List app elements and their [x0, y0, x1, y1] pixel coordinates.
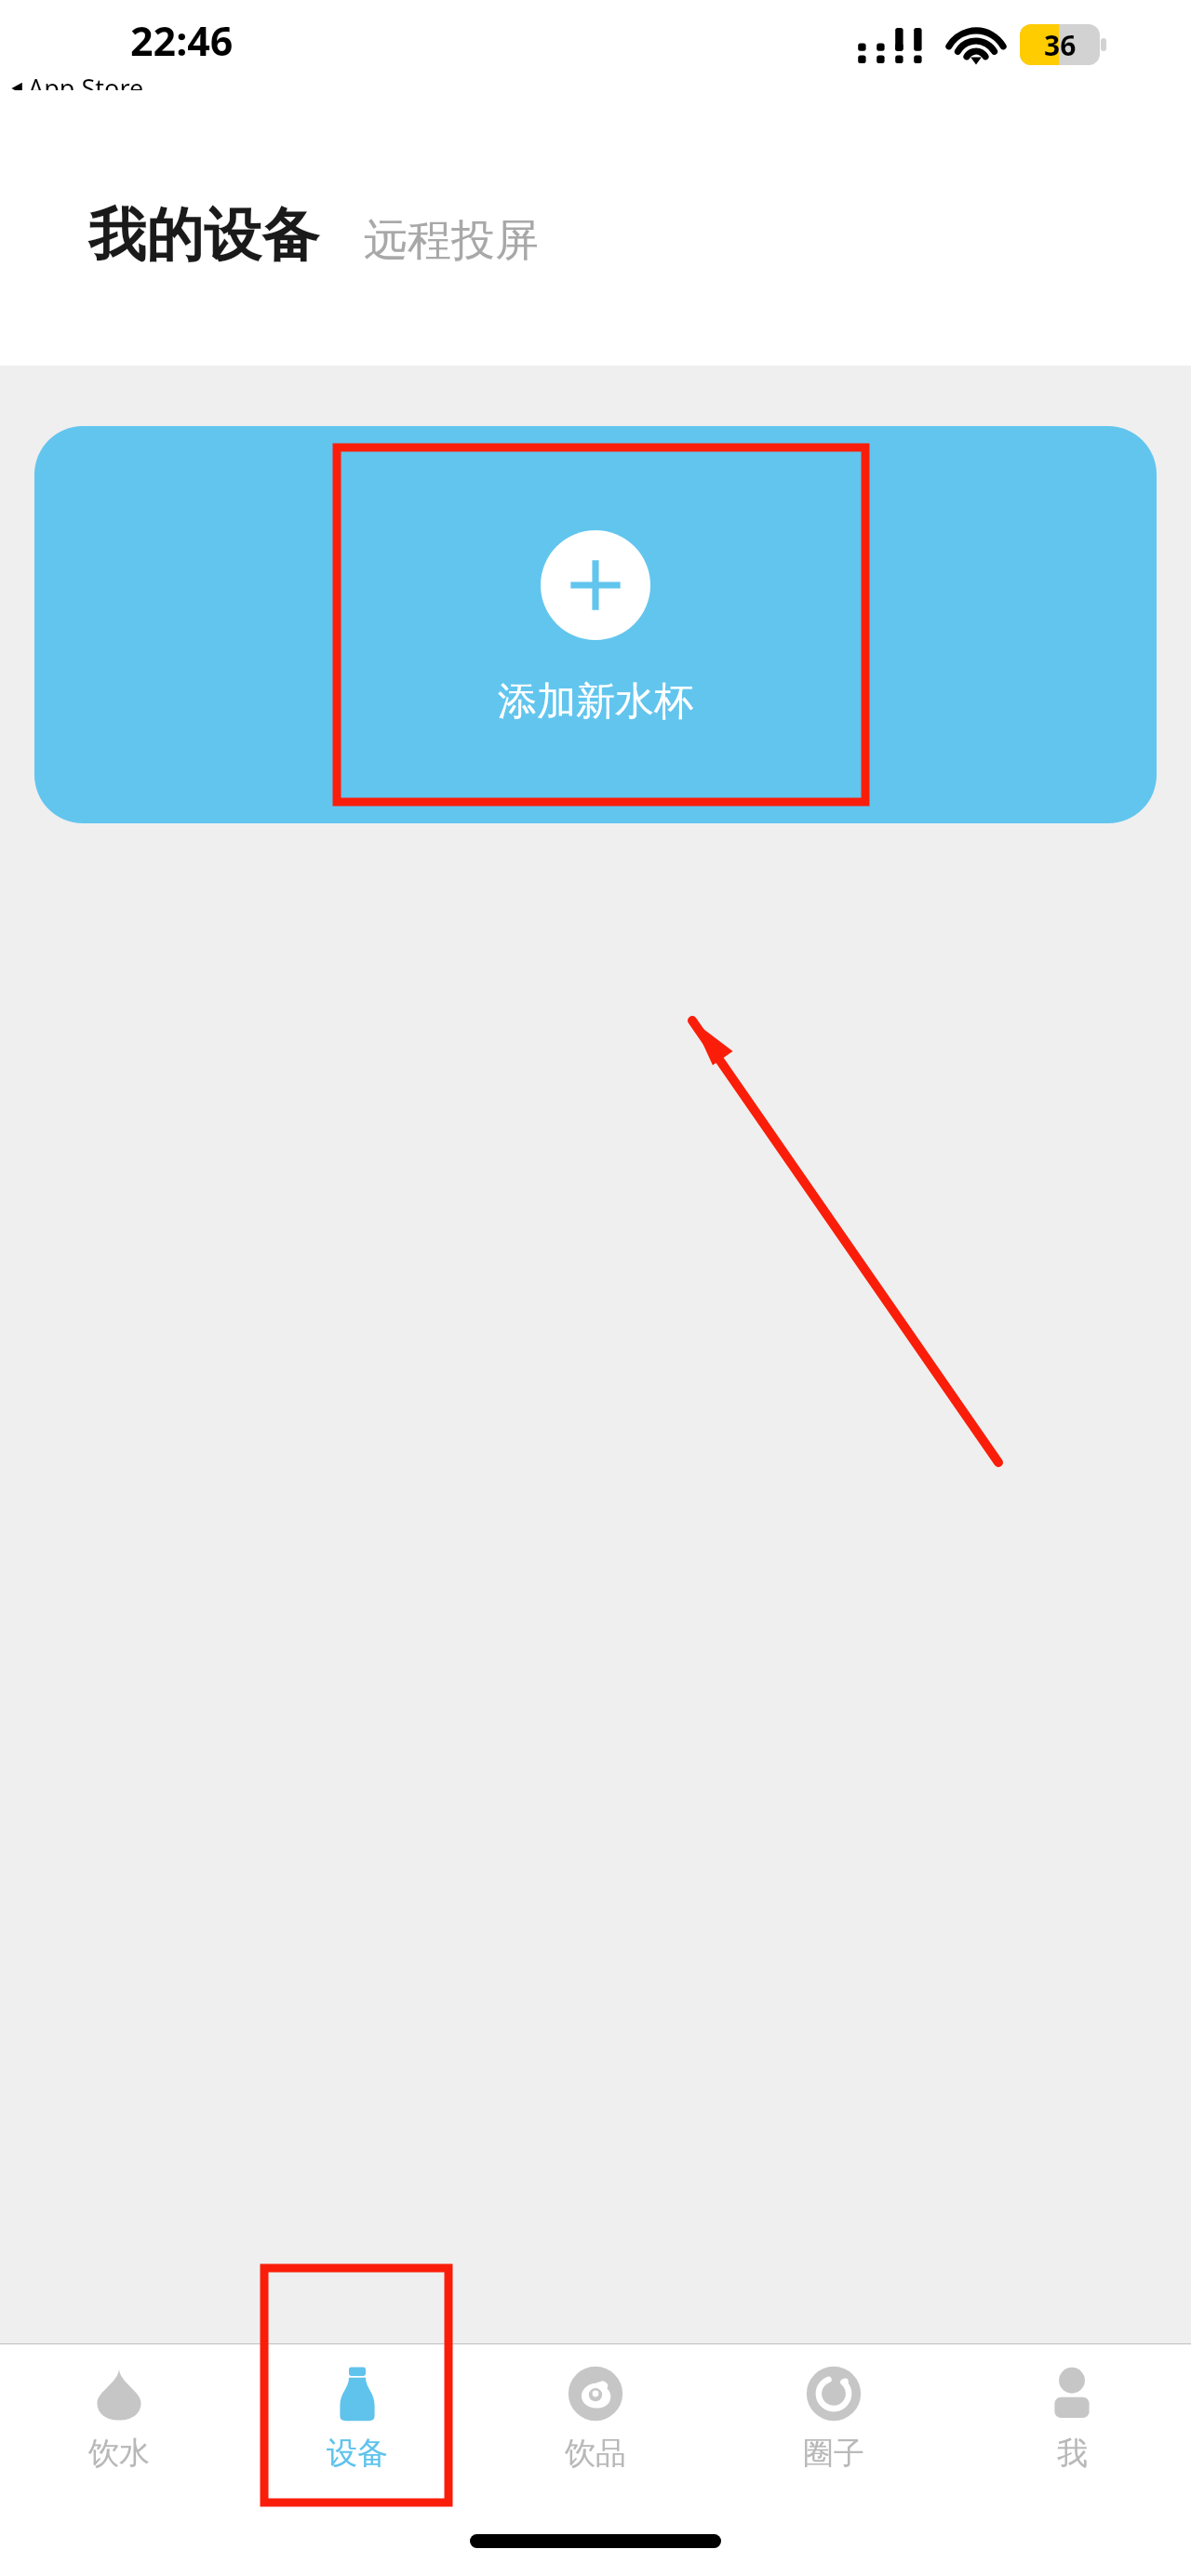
- button[interactable]: 饮品: [476, 2344, 715, 2512]
- button[interactable]: 设备: [238, 2344, 476, 2512]
- staticText: 我: [1057, 2434, 1088, 2473]
- staticText: 远程投屏: [364, 213, 539, 268]
- button[interactable]: 远程投屏: [364, 213, 539, 268]
- staticText: App Store: [28, 71, 144, 105]
- staticText: 36: [1044, 26, 1077, 64]
- staticText: 设备: [327, 2434, 388, 2473]
- staticText: 饮品: [565, 2434, 626, 2473]
- button[interactable]: 饮水: [0, 2344, 238, 2512]
- button[interactable]: 圈子: [715, 2344, 953, 2512]
- staticText: 圈子: [803, 2434, 864, 2473]
- staticText: 饮水: [88, 2434, 150, 2473]
- button[interactable]: 我: [953, 2344, 1191, 2512]
- button[interactable]: 添加新水杯: [34, 426, 1157, 823]
- staticText: 22:46: [130, 13, 234, 68]
- staticText: 我的设备: [88, 199, 319, 272]
- button[interactable]: 我的设备: [88, 199, 319, 272]
- staticText: 添加新水杯: [498, 677, 693, 727]
